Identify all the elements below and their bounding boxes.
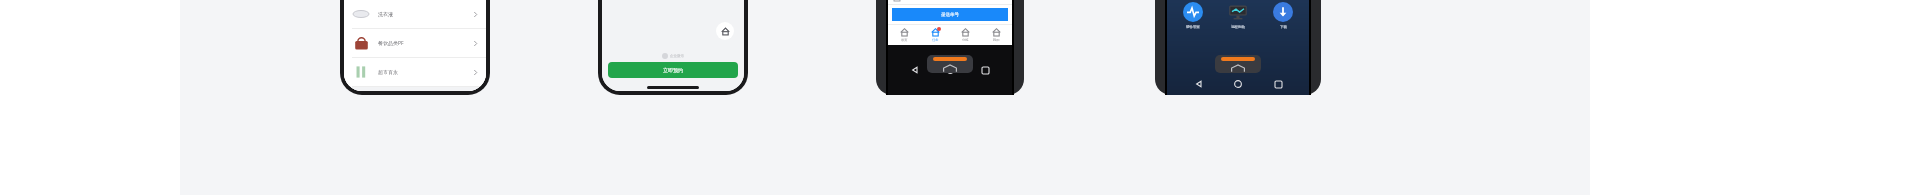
button[interactable]: 录送单号: [892, 8, 1008, 21]
button[interactable]: 洗衣液: [344, 0, 486, 28]
button[interactable]: 远程协助: [1219, 1, 1257, 29]
staticText: 餐饮品类PF: [378, 40, 404, 47]
staticText: 立即预约: [663, 67, 683, 73]
button[interactable]: Home: [1230, 76, 1246, 92]
button[interactable]: 超市百永: [344, 58, 486, 86]
staticText: 任务: [932, 38, 939, 42]
staticText: 下载: [1280, 25, 1287, 29]
staticText: 首页: [901, 38, 908, 42]
button[interactable]: Back: [907, 62, 923, 78]
button[interactable]: Back: [1191, 76, 1207, 92]
staticText: 录送单号: [941, 12, 959, 18]
button[interactable]: 我的: [982, 25, 1010, 45]
staticText: 企业微信: [670, 54, 684, 58]
staticText: 洗衣液: [378, 11, 393, 17]
button[interactable]: 下载: [1264, 1, 1302, 29]
button[interactable]: Recents: [977, 62, 993, 78]
button[interactable]: 分拣: [951, 25, 979, 45]
staticText: 远程协助: [1231, 25, 1245, 29]
staticText: 超市百永: [378, 69, 398, 75]
button[interactable]: Home: [1215, 55, 1261, 73]
button[interactable]: Home: [927, 55, 973, 73]
button[interactable]: 无: [894, 0, 1006, 4]
button[interactable]: 餐饮品类PF: [344, 29, 486, 57]
button[interactable]: Home: [942, 62, 958, 78]
button[interactable]: 硬件管家: [1174, 1, 1212, 29]
staticText: 我的: [993, 38, 1000, 42]
staticText: 硬件管家: [1186, 25, 1200, 29]
staticText: 分拣: [962, 38, 969, 42]
button[interactable]: Recents: [1270, 76, 1286, 92]
button[interactable]: Home shortcut: [716, 22, 734, 40]
button[interactable]: 首页: [890, 25, 918, 45]
button[interactable]: 立即预约: [608, 62, 738, 78]
button[interactable]: 任务: [921, 25, 949, 45]
